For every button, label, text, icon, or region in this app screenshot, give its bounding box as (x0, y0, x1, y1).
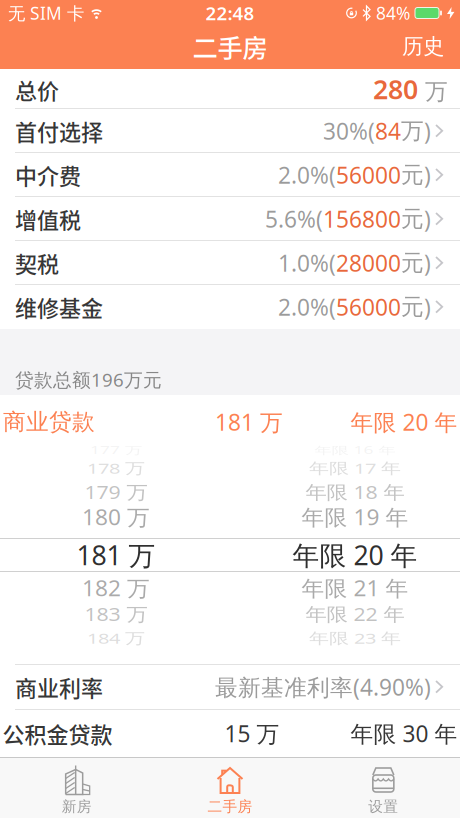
button[interactable]: 增值税 (0, 197, 460, 241)
staticText: 181 万 (76, 537, 155, 573)
staticText: 56000 (336, 160, 401, 190)
staticText: 180 万 (82, 502, 150, 532)
staticText: 二手房 (207, 797, 252, 815)
staticText: 280 (373, 71, 418, 107)
button[interactable]: 历史 (402, 33, 460, 60)
staticText: 84 (375, 116, 401, 146)
staticText: 84% (376, 1, 410, 24)
staticText: 22:48 (205, 1, 254, 25)
staticText: 年限 18 年 (305, 478, 404, 506)
button[interactable]: 二手房 (153, 757, 307, 818)
staticText: ) (424, 204, 431, 234)
staticText: 179 万 (84, 478, 147, 506)
staticText: 5.6%( (265, 204, 323, 234)
staticText: 30%( (323, 116, 375, 146)
staticText: 28000 (336, 248, 401, 278)
staticText: 元 (401, 205, 424, 233)
staticText: 维修基金 (15, 291, 103, 323)
staticText: 历史 (402, 33, 444, 60)
staticText: 贷款总额196万元 (15, 367, 162, 392)
staticText: 2.0%( (278, 292, 336, 322)
staticText: 商业利率 (15, 671, 103, 703)
button[interactable]: 商业利率 (0, 665, 460, 709)
staticText: 二手房 (192, 28, 267, 65)
staticText: 184 万 (87, 625, 145, 651)
button[interactable]: 新房 (0, 757, 153, 818)
staticText: 178 万 (87, 455, 145, 481)
staticText: 元 (401, 161, 424, 189)
staticText: 无 SIM 卡 (8, 1, 84, 24)
button[interactable]: 公积金贷款 (0, 710, 460, 757)
staticText: 156800 (323, 204, 401, 234)
staticText: 总价 (15, 74, 59, 106)
staticText: 2.0%( (278, 160, 336, 190)
staticText: 年限 30 年 (350, 718, 457, 748)
staticText: 契税 (15, 247, 59, 279)
staticText: 183 万 (84, 600, 147, 628)
staticText: 年限 19 年 (301, 502, 408, 532)
staticText: 年限 17 年 (309, 455, 401, 481)
staticText: 年限 22 年 (305, 600, 404, 628)
button[interactable]: 首付选择 (0, 109, 460, 153)
staticText: 元 (401, 293, 424, 321)
button[interactable]: 商业贷款 (0, 395, 460, 446)
staticText: 首付选择 (15, 115, 103, 147)
staticText: 新房 (62, 797, 92, 815)
staticText: 年限 20 年 (350, 407, 457, 437)
button[interactable]: 契税 (0, 241, 460, 285)
staticText: 年限 20 年 (292, 537, 417, 573)
staticText: 181 万 (215, 407, 283, 437)
staticText: 万 (418, 78, 448, 106)
staticText: 年限 23 年 (309, 625, 401, 651)
staticText: 最新基准利率(4.90%) (215, 672, 431, 702)
staticText: 商业贷款 (3, 408, 95, 436)
staticText: 56000 (336, 292, 401, 322)
staticText: 182 万 (82, 573, 150, 603)
staticText: 中介费 (15, 159, 81, 191)
staticText: 公积金贷款 (2, 718, 112, 749)
staticText: ) (424, 248, 431, 278)
staticText: 年限 21 年 (301, 573, 408, 603)
staticText: 增值税 (15, 203, 81, 235)
button[interactable]: 设置 (307, 757, 460, 818)
staticText: ) (424, 116, 431, 146)
button[interactable]: 中介费 (0, 153, 460, 197)
button[interactable]: 总价 (0, 69, 460, 109)
button[interactable]: 维修基金 (0, 285, 460, 329)
staticText: 15 万 (224, 718, 279, 748)
staticText: 1.0%( (278, 248, 336, 278)
staticText: ) (424, 160, 431, 190)
staticText: ) (424, 292, 431, 322)
staticText: 设置 (368, 797, 398, 815)
staticText: 元 (401, 249, 424, 277)
staticText: 万 (401, 117, 424, 145)
